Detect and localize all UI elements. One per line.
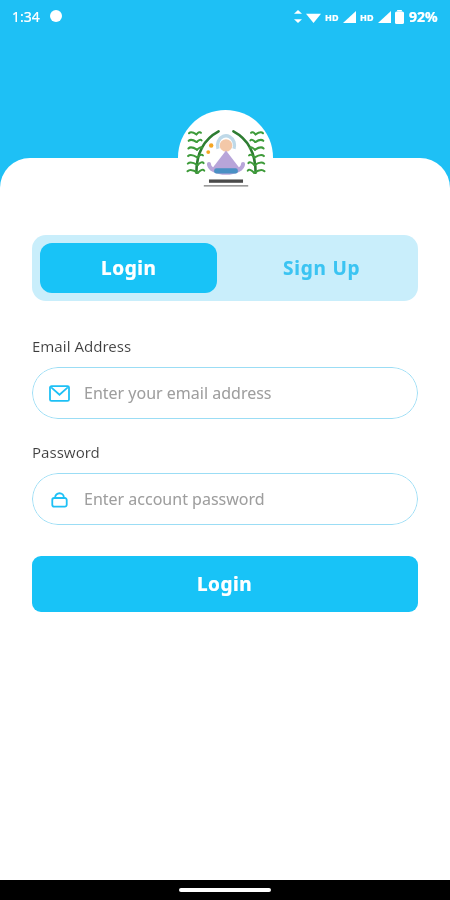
staticText: Login: [197, 571, 253, 597]
button[interactable]: Login: [40, 243, 217, 293]
button[interactable]: Login: [32, 556, 418, 612]
staticText: 92%: [409, 7, 438, 26]
button[interactable]: Enter your email address: [32, 367, 418, 419]
staticText: Enter account password: [84, 488, 265, 510]
staticText: Login: [101, 255, 157, 281]
button[interactable]: Sign Up: [225, 243, 418, 293]
staticText: Email Address: [32, 336, 132, 356]
staticText: Password: [32, 442, 100, 462]
staticText: Enter your email address: [84, 382, 272, 404]
button[interactable]: Enter account password: [32, 473, 418, 525]
staticText: HD: [325, 11, 339, 23]
staticText: HD: [360, 11, 374, 23]
staticText: Sign Up: [283, 255, 361, 281]
staticText: 1:34: [12, 7, 40, 26]
